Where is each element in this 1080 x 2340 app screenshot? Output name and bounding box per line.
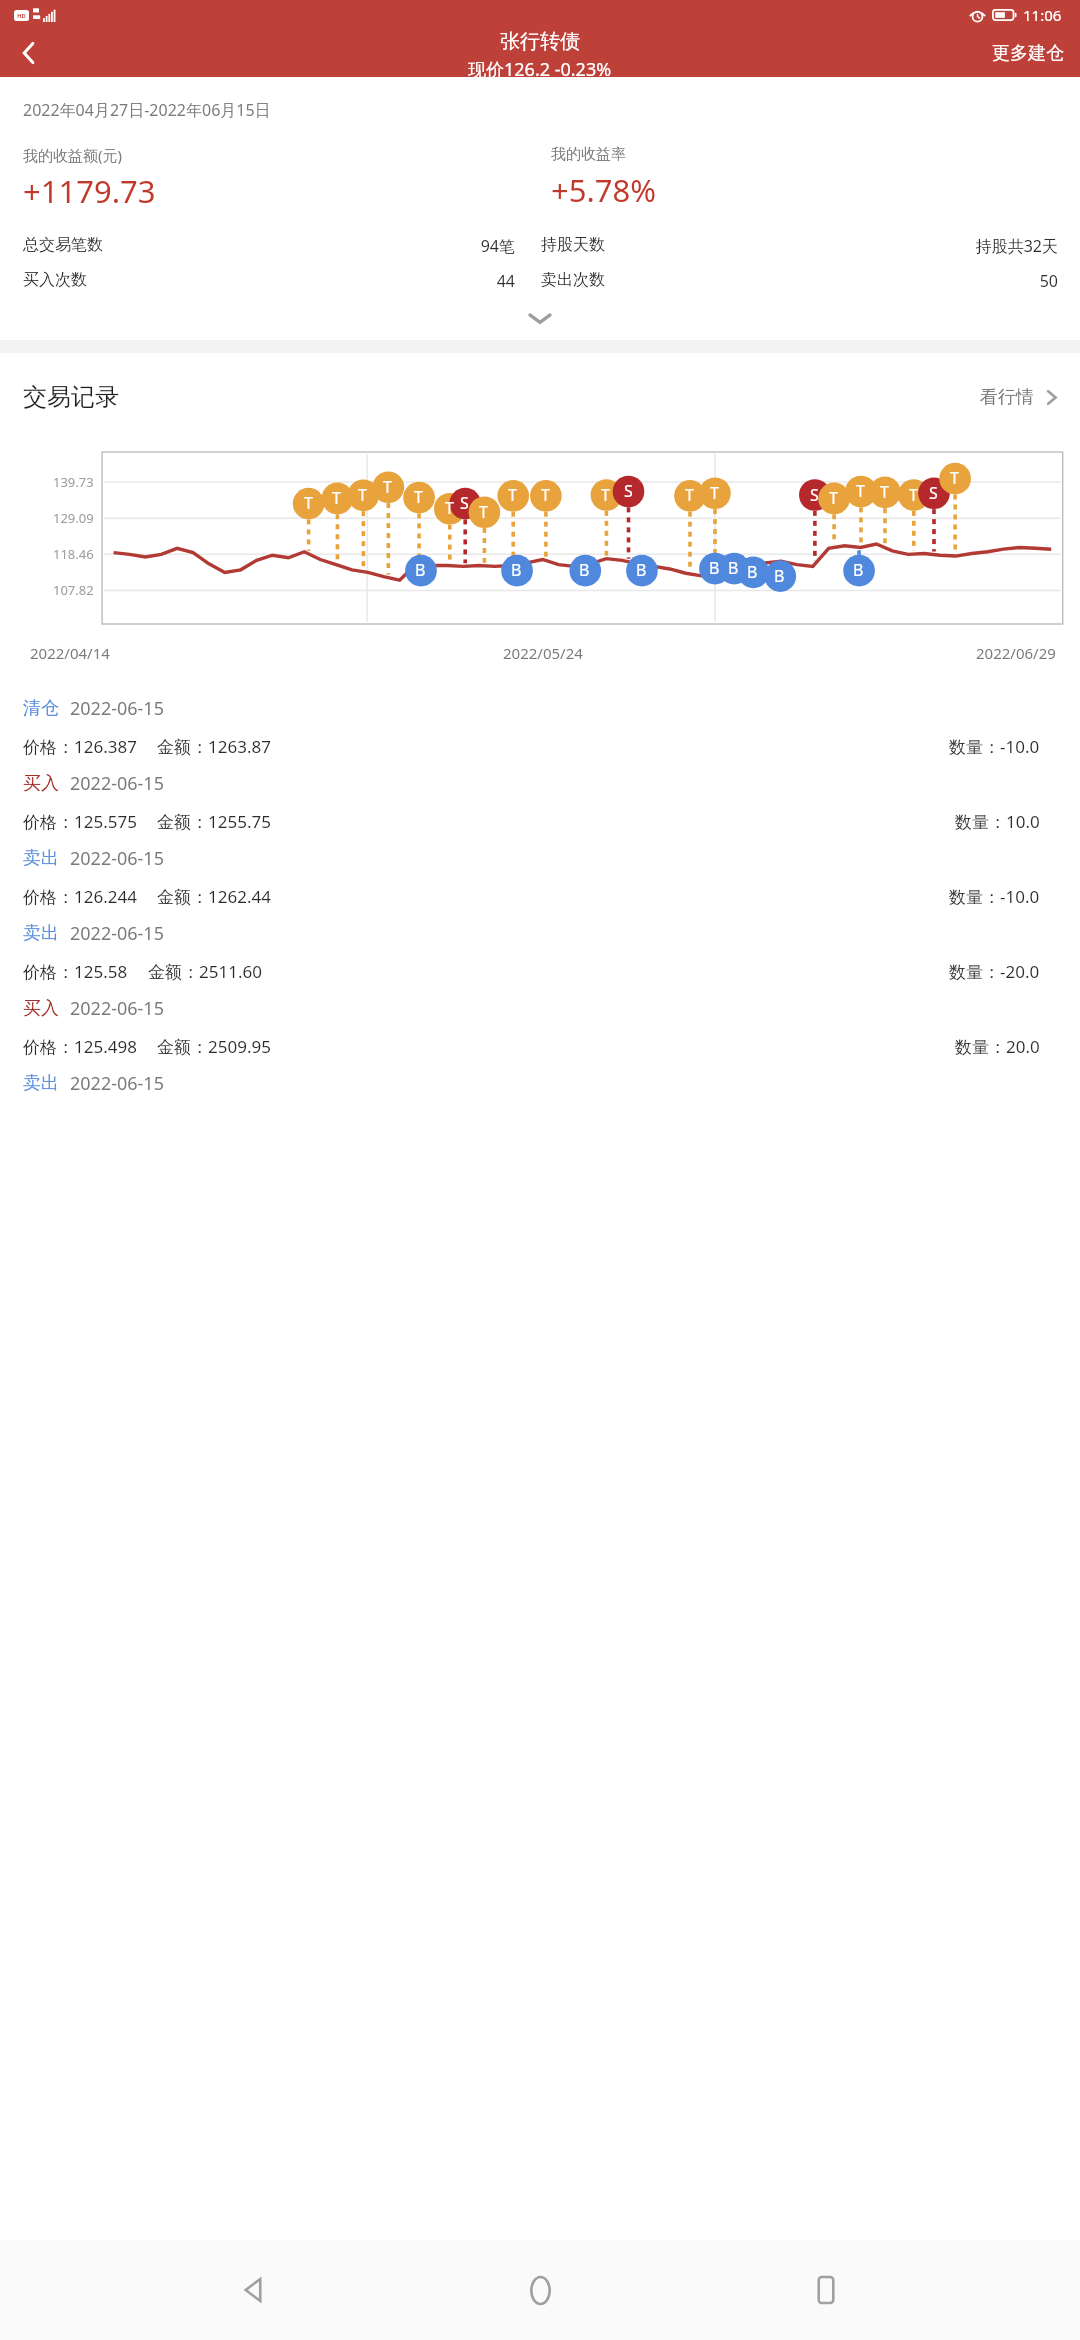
staticText: T xyxy=(479,501,488,523)
staticText: B xyxy=(709,557,720,579)
staticText: 数量：-10.0 xyxy=(949,885,1040,908)
staticText: 107.82 xyxy=(53,581,94,599)
staticText: 2022/05/24 xyxy=(503,643,583,663)
staticText: 卖出 xyxy=(23,922,59,945)
staticText: 金额：1263.87 xyxy=(157,735,271,758)
staticText: 持股共32天 xyxy=(824,235,1058,257)
staticText: 我的收益额(元) xyxy=(23,145,123,165)
button[interactable]: 更多建仓 xyxy=(976,30,1080,77)
staticText: HD xyxy=(17,12,26,20)
button[interactable]: Home xyxy=(508,2258,572,2322)
staticText: T xyxy=(358,484,367,506)
staticText: 金额：1255.75 xyxy=(157,810,271,833)
staticText: 2022-06-15 xyxy=(70,696,164,721)
staticText: 买入次数 xyxy=(23,270,306,290)
staticText: 卖出 xyxy=(23,1072,59,1095)
staticText: S xyxy=(624,480,633,502)
staticText: T xyxy=(383,476,392,498)
staticText: 金额：1262.44 xyxy=(157,885,271,908)
staticText: B xyxy=(853,559,864,581)
button[interactable]: 清仓 xyxy=(0,689,1080,764)
staticText: T xyxy=(414,486,423,508)
button[interactable]: Recents xyxy=(794,2258,858,2322)
button[interactable]: 买入 xyxy=(0,764,1080,839)
staticText: 价格：125.58 xyxy=(23,960,128,983)
button[interactable]: Back xyxy=(6,30,52,76)
staticText: B xyxy=(728,557,739,579)
staticText: B xyxy=(747,561,758,583)
staticText: 更多建仓 xyxy=(992,42,1064,65)
staticText: S xyxy=(810,484,819,506)
staticText: 数量：10.0 xyxy=(955,810,1040,833)
button[interactable]: 买入 xyxy=(0,989,1080,1064)
staticText: S xyxy=(929,482,938,504)
staticText: +5.78% xyxy=(551,169,656,211)
staticText: 总交易笔数 xyxy=(23,235,306,255)
staticText: 44 xyxy=(306,270,515,292)
staticText: T xyxy=(304,492,313,514)
staticText: 我的收益率 xyxy=(551,145,626,164)
staticText: 买入 xyxy=(23,997,59,1020)
staticText: T xyxy=(710,482,719,504)
staticText: 价格：126.244 xyxy=(23,885,137,908)
staticText: B xyxy=(415,559,426,581)
staticText: 94笔 xyxy=(306,235,515,257)
staticText: T xyxy=(601,484,610,506)
staticText: 2022/04/14 xyxy=(30,643,110,663)
staticText: 看行情 xyxy=(980,386,1034,409)
staticText: T xyxy=(880,481,889,503)
staticText: T xyxy=(685,484,694,506)
staticText: T xyxy=(950,467,959,489)
staticText: 2022-06-15 xyxy=(70,846,164,871)
staticText: 数量：-20.0 xyxy=(949,960,1040,983)
button[interactable]: 看行情 xyxy=(974,376,1064,419)
staticText: B xyxy=(579,559,590,581)
staticText: T xyxy=(856,480,865,502)
staticText: 2022-06-15 xyxy=(70,1071,164,1096)
staticText: 清仓 xyxy=(23,697,59,720)
staticText: B xyxy=(511,559,522,581)
staticText: 交易记录 xyxy=(23,382,119,412)
staticText: 数量：20.0 xyxy=(955,1035,1040,1058)
staticText: 现价126.2 -0.23% xyxy=(468,57,612,77)
staticText: B xyxy=(636,559,647,581)
staticText: 50 xyxy=(824,270,1058,292)
staticText: 2022-06-15 xyxy=(70,921,164,946)
button[interactable]: Expand details xyxy=(0,302,1080,334)
staticText: 价格：126.387 xyxy=(23,735,137,758)
staticText: T xyxy=(508,484,517,506)
staticText: 118.46 xyxy=(53,545,94,563)
staticText: T xyxy=(829,487,838,509)
staticText: 卖出 xyxy=(23,847,59,870)
staticText: 买入 xyxy=(23,772,59,795)
staticText: B xyxy=(774,565,785,587)
staticText: 2022/06/29 xyxy=(976,643,1056,663)
button[interactable]: 卖出 xyxy=(0,839,1080,914)
staticText: 价格：125.498 xyxy=(23,1035,137,1058)
staticText: T xyxy=(445,497,454,519)
staticText: 2022年04月27日-2022年06月15日 xyxy=(23,99,271,121)
staticText: 数量：-10.0 xyxy=(949,735,1040,758)
staticText: 价格：125.575 xyxy=(23,810,137,833)
staticText: S xyxy=(460,492,469,514)
staticText: T xyxy=(909,484,918,506)
staticText: 139.73 xyxy=(53,473,94,491)
staticText: 金额：2509.95 xyxy=(157,1035,271,1058)
staticText: 持股天数 xyxy=(541,235,824,255)
button[interactable]: 卖出 xyxy=(0,914,1080,989)
button[interactable]: 卖出 xyxy=(0,1064,1080,1096)
staticText: 2022-06-15 xyxy=(70,996,164,1021)
staticText: 金额：2511.60 xyxy=(148,960,262,983)
button[interactable]: Back xyxy=(222,2258,286,2322)
staticText: +1179.73 xyxy=(23,170,156,212)
staticText: T xyxy=(332,487,341,509)
staticText: 129.09 xyxy=(53,509,94,527)
staticText: T xyxy=(541,484,550,506)
staticText: 2022-06-15 xyxy=(70,771,164,796)
staticText: 卖出次数 xyxy=(541,270,824,290)
staticText: 11:06 xyxy=(1023,5,1062,25)
staticText: 张行转债 xyxy=(500,29,580,54)
